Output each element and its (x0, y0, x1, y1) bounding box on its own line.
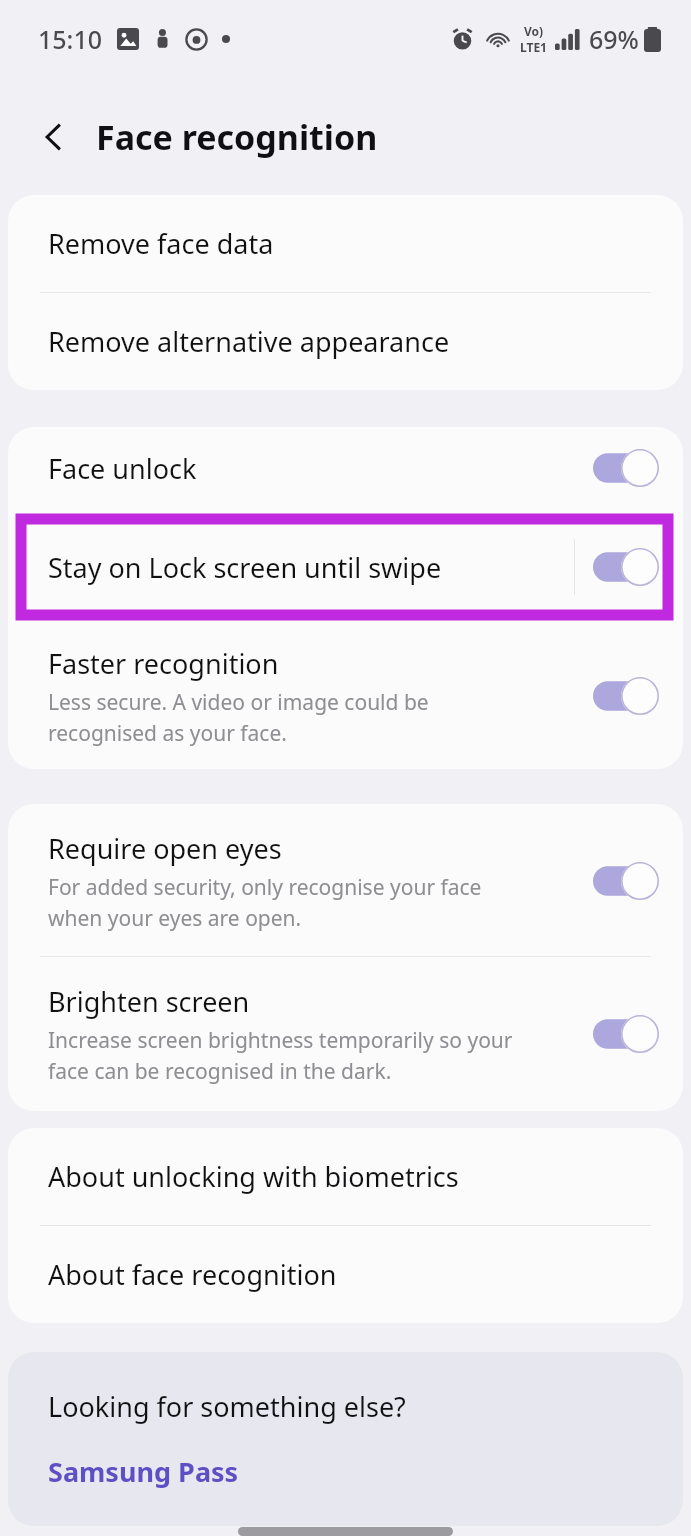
button[interactable]: Back (28, 111, 80, 163)
button[interactable]: Require open eyes (8, 804, 683, 956)
staticText: Face recognition (96, 114, 378, 160)
staticText: Face unlock (48, 450, 197, 487)
staticText: Faster recognition (48, 645, 279, 682)
staticText: About unlocking with biometrics (48, 1158, 459, 1195)
staticText: Remove face data (48, 225, 274, 262)
staticText: Require open eyes (48, 830, 282, 867)
button[interactable]: Brighten screen (593, 1015, 659, 1053)
button[interactable]: Require open eyes (593, 862, 659, 900)
staticText: 15:10 (38, 22, 103, 56)
button[interactable]: Remove alternative appearance (8, 293, 683, 390)
button[interactable]: Brighten screen (8, 957, 683, 1111)
staticText: Remove alternative appearance (48, 323, 450, 360)
staticText: Samsung Pass (48, 1453, 239, 1490)
button[interactable]: Face unlock (8, 427, 683, 509)
staticText: Stay on Lock screen until swipe (48, 549, 442, 586)
staticText: Less secure. A video or image could be r… (48, 688, 429, 747)
staticText: LTE1 (520, 39, 547, 55)
button[interactable]: Faster recognition (8, 625, 683, 769)
staticText: 69% (589, 22, 639, 56)
staticText: For added security, only recognise your … (48, 873, 482, 932)
button[interactable]: Stay on Lock screen until swipe (8, 509, 683, 625)
button[interactable]: About unlocking with biometrics (8, 1128, 683, 1225)
staticText: Increase screen brightness temporarily s… (48, 1026, 513, 1085)
button[interactable]: Face unlock (593, 449, 659, 487)
button[interactable]: Remove face data (8, 195, 683, 292)
button[interactable]: About face recognition (8, 1226, 683, 1323)
staticText: Brighten screen (48, 983, 250, 1020)
button[interactable]: Faster recognition (593, 677, 659, 715)
button[interactable]: Stay on Lock screen until swipe (593, 548, 659, 586)
staticText: Looking for something else? (48, 1388, 406, 1425)
staticText: About face recognition (48, 1256, 337, 1293)
button[interactable]: Samsung Pass (48, 1453, 239, 1490)
staticText: Vo) (524, 23, 544, 39)
